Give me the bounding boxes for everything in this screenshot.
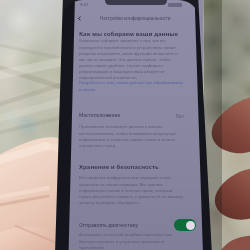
button[interactable]: Back [75, 14, 84, 23]
staticText: Анонимные отчёты об ошибках помогают нам… [79, 232, 185, 250]
staticText: Компания собирает сведения о том, как вы… [79, 38, 185, 80]
staticText: Приложение использует данные о вашем мес… [79, 124, 185, 148]
staticText: Вкл. [176, 113, 185, 119]
staticText: Подробнее о том, какие данные мы обрабат… [79, 80, 185, 92]
button[interactable]: Toggle diagnostics [174, 219, 196, 231]
button[interactable]: Местоположение [79, 111, 185, 120]
staticText: Отправлять диагностику [79, 222, 138, 229]
staticText: Хранение и безопасность [79, 163, 159, 171]
button[interactable]: Back [75, 13, 195, 23]
staticText: Как мы собираем ваши данные [79, 30, 179, 38]
button[interactable]: Подробнее о том, какие данные мы обрабат… [79, 80, 185, 92]
staticText: 9:41 [80, 2, 89, 8]
button[interactable]: Отправлять диагностику [79, 219, 196, 231]
staticText: Настройки конфиденциальности [100, 15, 171, 21]
staticText: Местоположение [79, 112, 121, 119]
staticText: Все сведения шифруются при передаче и пр… [79, 175, 185, 205]
